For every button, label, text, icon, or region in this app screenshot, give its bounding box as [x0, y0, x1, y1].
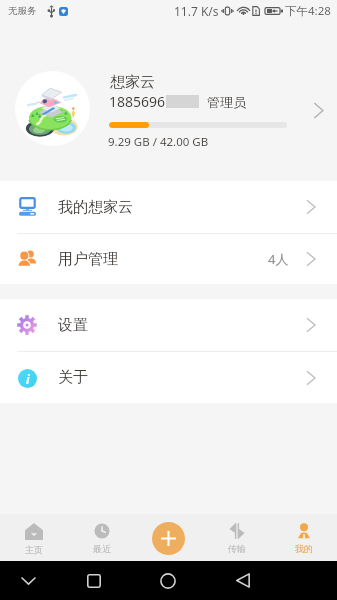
- button[interactable]: Hide keyboard: [8, 561, 48, 600]
- staticText: 4人: [268, 250, 289, 268]
- button[interactable]: 主页: [0, 514, 68, 561]
- staticText: 关于: [58, 368, 88, 387]
- button[interactable]: Back: [223, 561, 263, 600]
- button[interactable]: i: [0, 352, 337, 403]
- button[interactable]: 我的想家云: [0, 181, 337, 233]
- staticText: 9.29 GB / 42.00 GB: [108, 134, 209, 150]
- staticText: 我的想家云: [58, 198, 133, 217]
- staticText: 传输: [228, 543, 246, 554]
- staticText: 主页: [25, 544, 43, 555]
- staticText: 管理员: [207, 94, 246, 110]
- staticText: 用户管理: [58, 250, 118, 269]
- staticText: i: [26, 371, 30, 387]
- staticText: 无服务: [8, 5, 37, 17]
- staticText: 想家云: [110, 73, 155, 92]
- staticText: 我的: [295, 543, 313, 554]
- staticText: 设置: [58, 316, 88, 335]
- staticText: 1885696: [109, 92, 166, 111]
- button[interactable]: 传输: [203, 514, 270, 561]
- button[interactable]: Add: [152, 522, 185, 555]
- button[interactable]: 想家云: [0, 22, 337, 181]
- button[interactable]: 设置: [0, 299, 337, 351]
- button[interactable]: 最近: [68, 514, 136, 561]
- button[interactable]: 我的: [270, 514, 337, 561]
- staticText: 下午4:28: [285, 3, 331, 19]
- button[interactable]: Home: [148, 561, 188, 600]
- button[interactable]: Recents: [74, 561, 114, 600]
- staticText: 11.7 K/s: [174, 3, 219, 19]
- staticText: 最近: [93, 543, 111, 554]
- button[interactable]: 用户管理: [0, 234, 337, 284]
